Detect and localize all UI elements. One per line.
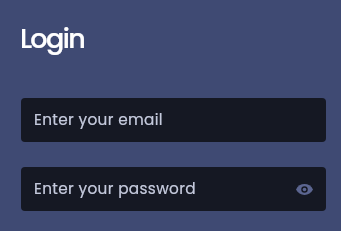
staticText: Enter your password bbox=[34, 178, 196, 199]
staticText: Enter your email bbox=[34, 109, 163, 130]
button[interactable]: Enter your email bbox=[21, 98, 326, 142]
button[interactable]: Enter your password bbox=[21, 167, 326, 211]
staticText: Login bbox=[20, 20, 85, 58]
button[interactable]: Show password bbox=[289, 174, 319, 204]
